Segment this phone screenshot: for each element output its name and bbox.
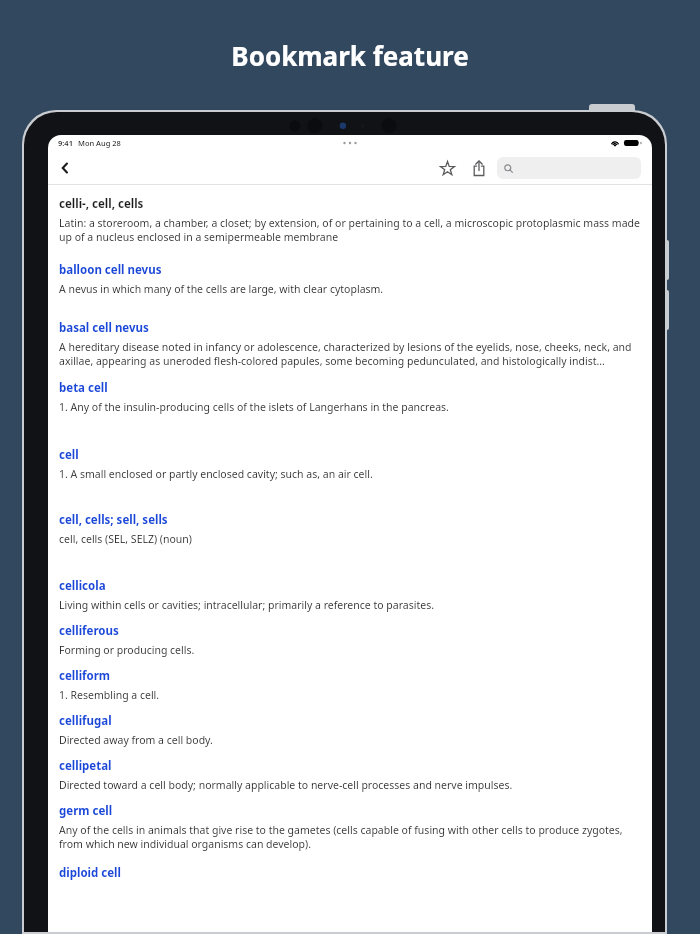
button[interactable]: celliform (59, 668, 643, 702)
staticText: cellipetal (59, 758, 112, 774)
button[interactable]: cell, cells; sell, sells (59, 512, 643, 546)
button[interactable]: Back (51, 154, 79, 182)
staticText: A hereditary disease noted in infancy or… (59, 340, 643, 368)
button[interactable]: cellifugal (59, 713, 643, 747)
button[interactable]: celli-, cell, cells (59, 196, 643, 244)
button[interactable]: Bookmark (434, 155, 460, 181)
staticText: Directed away from a cell body. (59, 733, 213, 747)
button[interactable]: beta cell (59, 380, 643, 414)
button[interactable]: celliferous (59, 623, 643, 657)
staticText: A nevus in which many of the cells are l… (59, 282, 384, 296)
staticText: Directed toward a cell body; normally ap… (59, 778, 513, 792)
staticText: cell (59, 447, 79, 463)
staticText: germ cell (59, 803, 113, 819)
staticText: beta cell (59, 380, 108, 396)
staticText: 1. A small enclosed or partly enclosed c… (59, 467, 373, 481)
button[interactable]: cell (59, 447, 643, 481)
button[interactable]: Search (497, 157, 641, 179)
button[interactable]: germ cell (59, 803, 643, 851)
staticText: Latin: a storeroom, a chamber, a closet;… (59, 216, 643, 244)
staticText: cell, cells; sell, sells (59, 512, 168, 528)
button[interactable]: balloon cell nevus (59, 262, 643, 296)
staticText: basal cell nevus (59, 320, 149, 336)
staticText: celliform (59, 668, 111, 684)
staticText: 1. Any of the insulin-producing cells of… (59, 400, 449, 414)
staticText: Any of the cells in animals that give ri… (59, 823, 643, 851)
staticText: Forming or producing cells. (59, 643, 195, 657)
staticText: cellicola (59, 578, 106, 594)
staticText: Living within cells or cavities; intrace… (59, 598, 434, 612)
button[interactable]: diploid cell (59, 865, 121, 881)
staticText: 9:41 (58, 138, 73, 148)
button[interactable]: Share (466, 155, 492, 181)
staticText: Bookmark feature (231, 38, 469, 73)
button[interactable]: basal cell nevus (59, 320, 643, 368)
staticText: celli-, cell, cells (59, 196, 144, 212)
staticText: celliferous (59, 623, 119, 639)
button[interactable]: cellipetal (59, 758, 643, 792)
staticText: balloon cell nevus (59, 262, 162, 278)
staticText: cellifugal (59, 713, 112, 729)
staticText: Mon Aug 28 (78, 138, 121, 148)
button[interactable]: cellicola (59, 578, 643, 612)
staticText: 1. Resembling a cell. (59, 688, 160, 702)
staticText: cell, cells (SEL, SELZ) (noun) (59, 532, 192, 546)
